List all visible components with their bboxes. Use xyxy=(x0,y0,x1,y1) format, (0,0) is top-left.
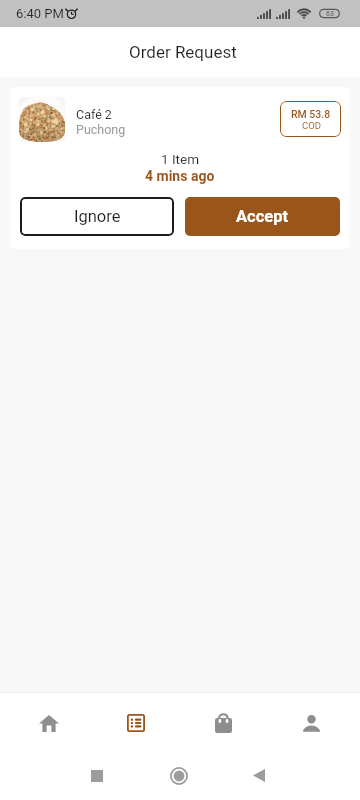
staticText: Accept xyxy=(236,207,289,226)
staticText: 1 Item xyxy=(161,151,200,167)
button[interactable]: Home xyxy=(5,692,92,752)
staticText: 63 xyxy=(326,10,334,18)
staticText: Puchong xyxy=(76,122,126,137)
staticText: RM 53.8 xyxy=(291,108,331,120)
button[interactable]: Shop xyxy=(180,692,267,752)
staticText: Order Request xyxy=(129,42,237,62)
button[interactable]: Profile xyxy=(268,692,355,752)
staticText: Ignore xyxy=(74,207,121,226)
staticText: COD xyxy=(302,120,321,131)
button[interactable]: Orders xyxy=(92,692,179,752)
staticText: 6:40 PM xyxy=(16,6,64,21)
staticText: Café 2 xyxy=(76,107,112,122)
staticText: 4 mins ago xyxy=(145,168,215,184)
button[interactable]: Accept xyxy=(185,197,340,236)
button[interactable]: Ignore xyxy=(20,197,174,236)
